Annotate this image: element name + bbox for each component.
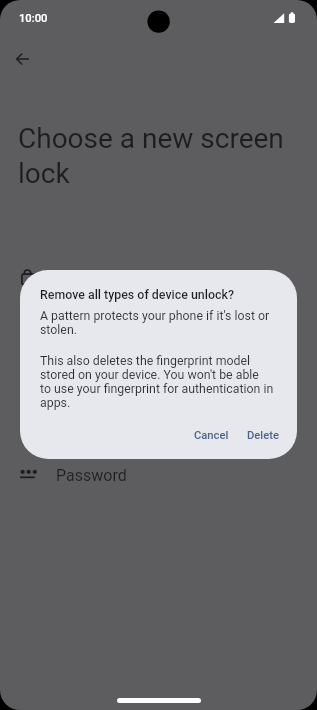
staticText: Delete xyxy=(247,429,279,442)
staticText: 10:00 xyxy=(19,12,48,25)
button[interactable] xyxy=(0,255,317,299)
staticText: Cancel xyxy=(194,429,229,442)
staticText: This also deletes the fingerprint model … xyxy=(40,354,274,410)
staticText: A pattern protects your phone if it's lo… xyxy=(40,309,270,337)
button[interactable]: Back xyxy=(0,37,44,81)
button[interactable]: Delete xyxy=(238,422,288,449)
staticText: Choose a new screen lock xyxy=(18,122,294,190)
staticText: Password xyxy=(56,466,127,485)
button[interactable]: Cancel xyxy=(185,422,238,449)
staticText: Remove all types of device unlock? xyxy=(40,287,234,302)
button[interactable]: Password xyxy=(0,452,317,496)
